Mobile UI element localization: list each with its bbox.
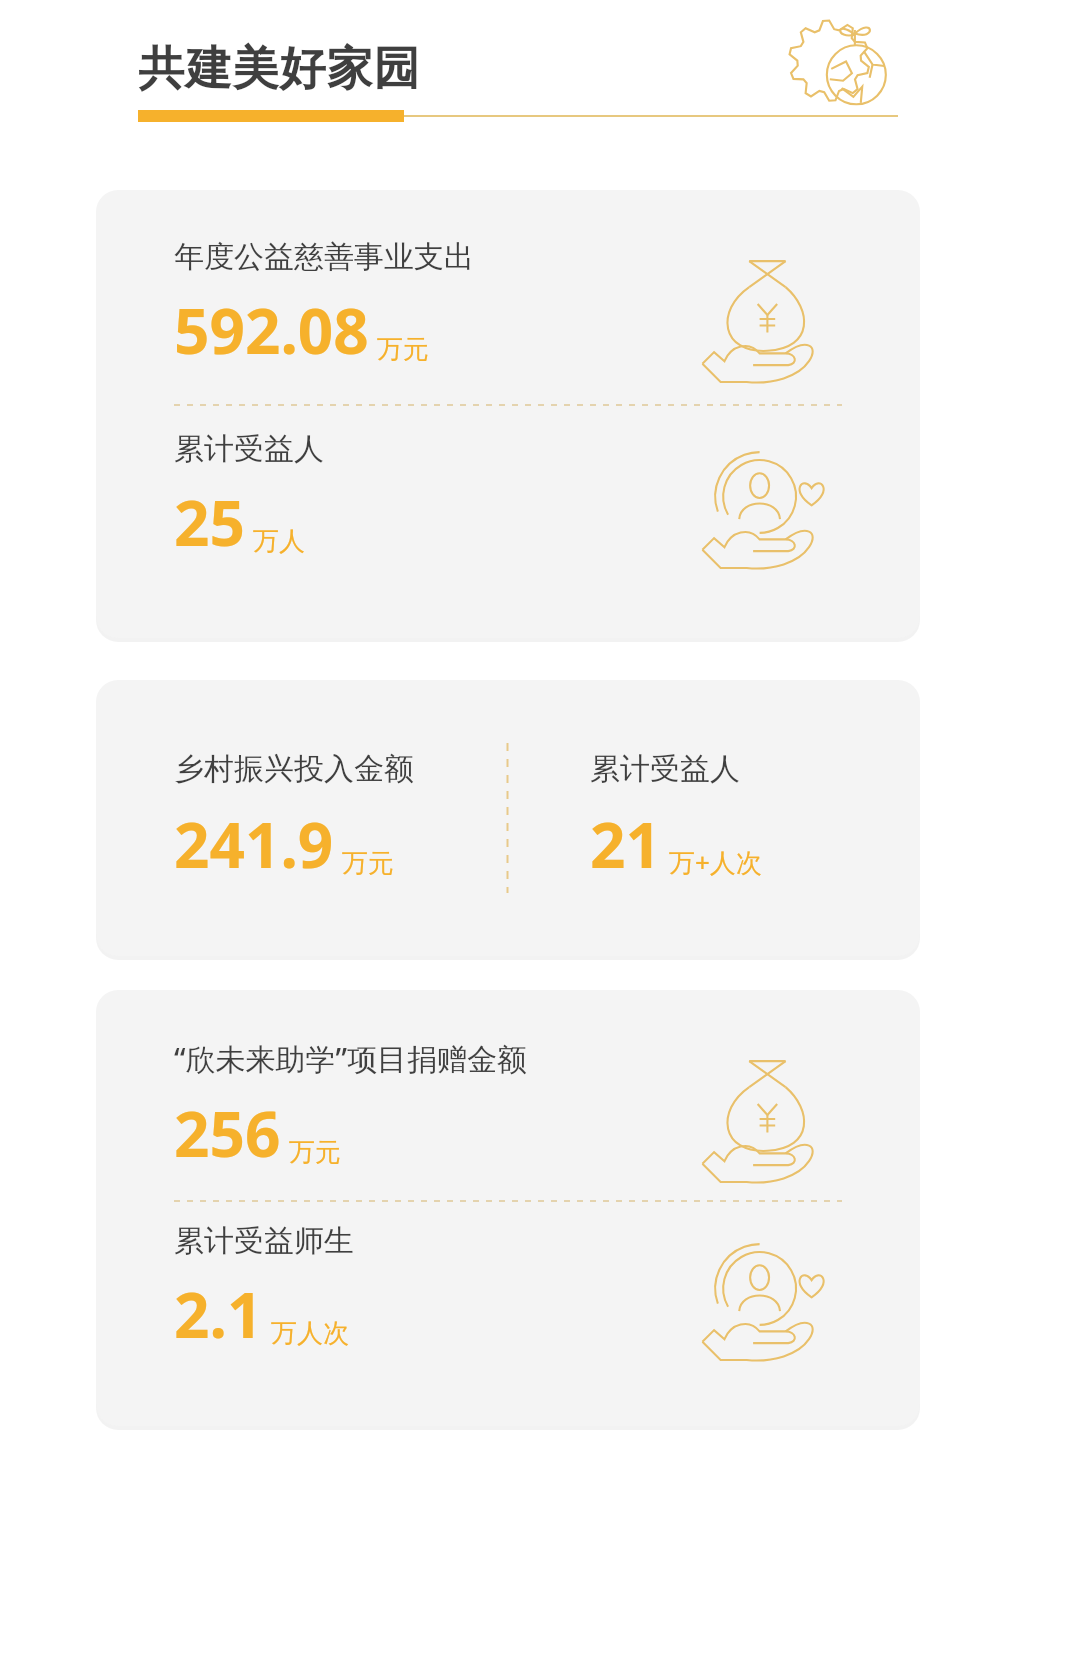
staticText: 25 [174, 480, 245, 564]
staticText: 万人次 [271, 1317, 349, 1350]
staticText: 2.1 [174, 1272, 263, 1356]
button[interactable]: “欣未来助学”项目捐赠金额 [96, 990, 920, 1426]
staticText: 万元 [377, 333, 429, 366]
staticText: 241.9 [174, 802, 334, 886]
staticText: 共建美好家园 [138, 40, 420, 98]
staticText: “欣未来助学”项目捐赠金额 [174, 1038, 528, 1079]
other: Donation amount [692, 252, 822, 382]
staticText: 累计受益人 [590, 750, 740, 788]
staticText: 乡村振兴投入金额 [174, 750, 414, 788]
staticText: 万元 [289, 1136, 341, 1169]
other: Beneficiaries [692, 1230, 822, 1360]
staticText: 万人 [253, 525, 305, 558]
other: Donation amount [692, 1052, 822, 1182]
other: Sustainability [782, 4, 900, 122]
staticText: 累计受益师生 [174, 1222, 354, 1260]
staticText: 万元 [342, 847, 394, 880]
button[interactable]: 乡村振兴投入金额 [96, 680, 920, 956]
staticText: 万+人次 [669, 844, 762, 880]
staticText: 21 [590, 802, 661, 886]
staticText: 592.08 [174, 288, 369, 372]
staticText: 256 [174, 1091, 281, 1175]
other: Beneficiaries [692, 438, 822, 568]
button[interactable]: 年度公益慈善事业支出 [96, 190, 920, 638]
staticText: 累计受益人 [174, 430, 324, 468]
staticText: 年度公益慈善事业支出 [174, 238, 474, 276]
